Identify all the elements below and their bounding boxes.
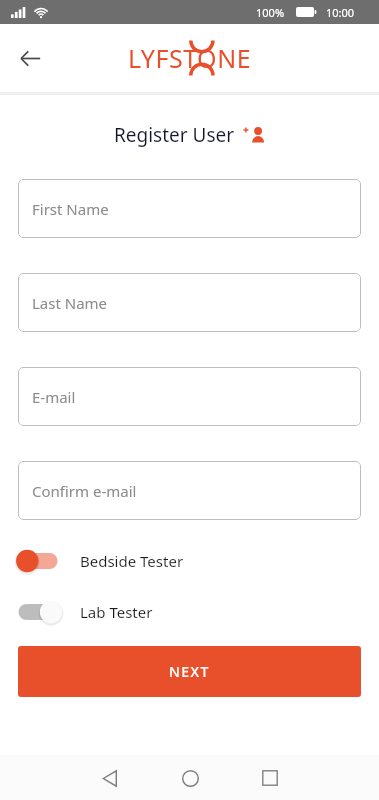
- button[interactable]: Bedside Tester: [0, 543, 379, 579]
- button[interactable]: Lab Tester: [0, 594, 379, 630]
- staticText: First Name: [32, 199, 109, 219]
- staticText: Confirm e-mail: [32, 481, 137, 501]
- button[interactable]: Recents: [249, 757, 291, 799]
- button[interactable]: First Name: [18, 179, 361, 238]
- staticText: 100%: [256, 5, 285, 20]
- staticText: 10:00: [326, 5, 355, 20]
- staticText: LYFSTONE: [128, 41, 252, 75]
- button[interactable]: Confirm e-mail: [18, 461, 361, 520]
- button[interactable]: E-mail: [18, 367, 361, 426]
- staticText: Bedside Tester: [80, 551, 184, 571]
- staticText: Register User: [114, 122, 235, 148]
- staticText: Lab Tester: [80, 602, 153, 622]
- staticText: NEXT: [169, 662, 210, 681]
- button[interactable]: Back: [89, 757, 131, 799]
- button[interactable]: NEXT: [18, 646, 361, 697]
- button[interactable]: Back: [7, 35, 53, 81]
- button[interactable]: Home: [169, 757, 211, 799]
- staticText: Last Name: [32, 293, 108, 313]
- button[interactable]: Last Name: [18, 273, 361, 332]
- staticText: E-mail: [32, 387, 76, 407]
